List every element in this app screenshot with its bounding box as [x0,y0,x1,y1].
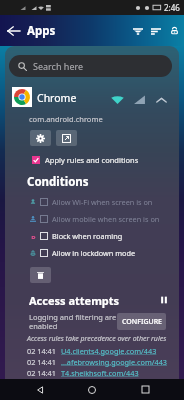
button[interactable]: Allow Wi-Fi when screen is on [5,193,179,210]
button[interactable]: Apply rules and conditions [5,153,179,167]
button[interactable]: Recent apps [132,379,158,400]
button[interactable]: Open app [56,130,77,146]
staticText: 2:46 [164,2,180,13]
button[interactable]: Search here [9,55,172,77]
button[interactable]: 02 14:41 [27,356,168,367]
button[interactable]: 02 14:41 [27,345,157,356]
button[interactable]: App settings [30,130,51,146]
staticText: Conditions [27,174,89,190]
staticText: Logging and filtering are enabled [29,312,117,331]
staticText: Allow Wi-Fi when screen is on [52,197,153,207]
staticText: Apply rules and conditions [45,155,139,165]
staticText: 02 14:41 [27,368,56,378]
staticText: Allow mobile when screen is on [52,214,160,224]
button[interactable]: Allow in lockdown mode [5,244,179,261]
button[interactable]: Lock [165,15,184,46]
button[interactable]: R [5,227,179,244]
staticText: ...afebrowsing.google.com/443 [61,357,168,367]
button[interactable]: Home [79,379,105,400]
staticText: Block when roaming [52,231,123,241]
staticText: Chrome [37,91,77,105]
staticText: Search here [33,60,84,72]
staticText: T4.sheikhsoft.com/443 [61,368,139,378]
button[interactable]: Back [27,379,53,400]
button[interactable]: Filter [129,15,147,46]
staticText: 02 14:41 [27,346,56,356]
button[interactable]: Pause logging [153,289,175,311]
staticText: R [31,233,36,239]
staticText: com.android.chrome [29,114,103,124]
staticText: U4.clients4.google.com/443 [61,346,157,356]
staticText: Allow in lockdown mode [52,248,136,258]
staticText: Apps [27,23,56,39]
button[interactable]: Allow mobile when screen is on [5,210,179,227]
button[interactable]: CONFIGURE [117,313,166,330]
button[interactable]: Sort [147,15,165,46]
staticText: Access rules take precedence over other … [27,334,167,344]
button[interactable]: 02 14:41 [27,367,139,378]
staticText: 02 14:41 [27,357,56,367]
staticText: CONFIGURE [122,317,162,327]
button[interactable]: Back [0,15,28,46]
staticText: Access attempts [29,293,120,308]
button[interactable]: Delete [30,267,51,283]
